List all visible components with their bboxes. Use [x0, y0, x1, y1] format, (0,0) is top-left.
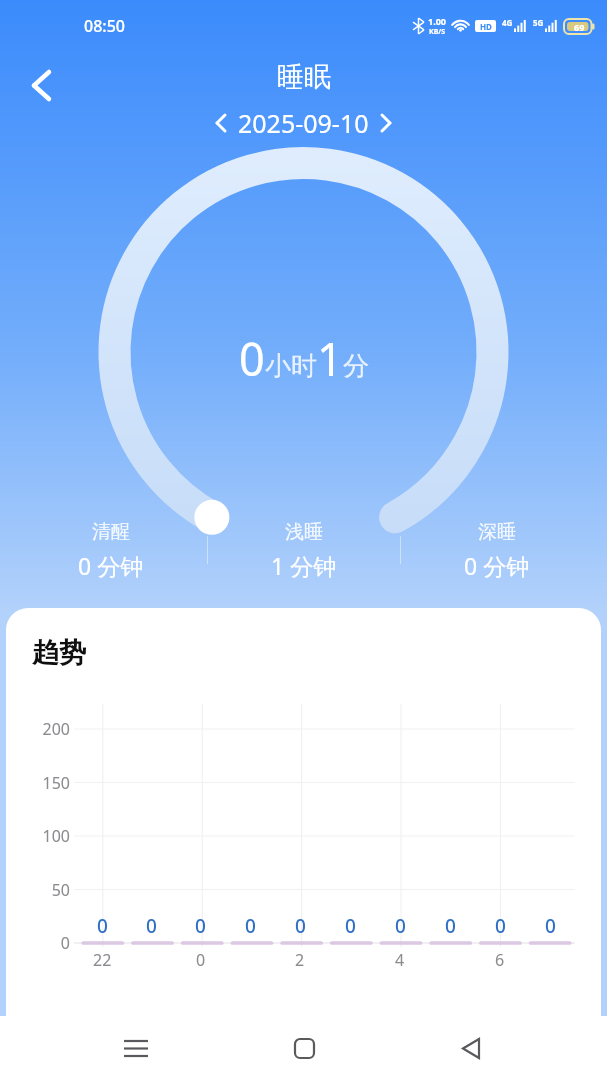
- staticText: 0: [245, 913, 256, 939]
- button[interactable]: Next day: [369, 106, 403, 140]
- staticText: 1: [317, 328, 343, 389]
- staticText: 200: [10, 718, 70, 740]
- button[interactable]: Recents: [105, 1017, 167, 1079]
- staticText: 0: [445, 913, 456, 939]
- staticText: 清醒: [92, 520, 130, 544]
- staticText: 0: [146, 913, 157, 939]
- staticText: 22: [93, 949, 112, 971]
- staticText: 0: [239, 328, 265, 389]
- staticText: 5G: [533, 17, 544, 28]
- staticText: 0: [345, 913, 356, 939]
- staticText: 分: [343, 350, 369, 383]
- button[interactable]: Previous day: [204, 106, 238, 140]
- staticText: 4G: [502, 17, 513, 28]
- button[interactable]: 深睡: [401, 520, 593, 581]
- staticText: 深睡: [478, 520, 516, 544]
- staticText: 0: [196, 949, 206, 971]
- staticText: 150: [10, 772, 70, 794]
- staticText: 0: [495, 913, 506, 939]
- button[interactable]: 浅睡: [208, 520, 400, 581]
- staticText: 0: [195, 913, 206, 939]
- staticText: 0 分钟: [464, 550, 530, 581]
- staticText: 1.00: [428, 15, 446, 27]
- staticText: 1 分钟: [271, 550, 337, 581]
- button[interactable]: Back: [440, 1017, 502, 1079]
- staticText: 0: [545, 913, 556, 939]
- button[interactable]: Back: [16, 60, 66, 110]
- button[interactable]: 清醒: [14, 520, 207, 581]
- staticText: 2: [295, 949, 305, 971]
- staticText: 0: [295, 913, 306, 939]
- staticText: 0: [97, 913, 108, 939]
- staticText: 睡眠: [277, 60, 331, 94]
- staticText: 浅睡: [285, 520, 323, 544]
- staticText: 4: [395, 949, 405, 971]
- staticText: HD: [480, 21, 492, 32]
- staticText: 50: [10, 879, 70, 901]
- staticText: 69: [574, 21, 585, 33]
- staticText: 6: [495, 949, 505, 971]
- staticText: KB/S: [429, 27, 446, 37]
- button[interactable]: Home: [273, 1017, 335, 1079]
- staticText: 趋势: [32, 636, 86, 670]
- staticText: 小时: [265, 350, 317, 383]
- staticText: 0: [10, 932, 70, 954]
- staticText: 100: [10, 825, 70, 847]
- staticText: 2025-09-10: [238, 106, 369, 140]
- staticText: 0 分钟: [78, 550, 144, 581]
- staticText: 08:50: [84, 15, 125, 37]
- staticText: 0: [395, 913, 406, 939]
